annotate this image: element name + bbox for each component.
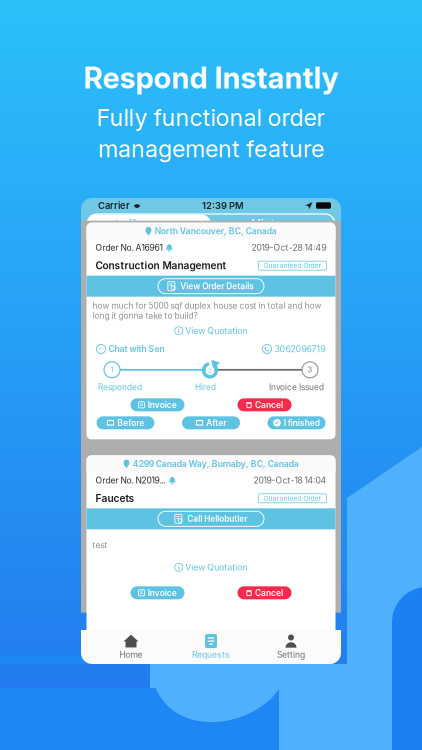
staticText: Cancel — [255, 588, 283, 598]
staticText: Home — [119, 650, 142, 660]
staticText: View Quotation — [185, 562, 247, 573]
staticText: how much for 5000 sqf duplex house cost … — [92, 301, 321, 321]
staticText: management feature — [98, 135, 324, 163]
staticText: Setting — [277, 650, 305, 660]
staticText: Hired — [195, 382, 216, 392]
staticText: 3 — [307, 365, 312, 374]
staticText: Call Hellobutler — [187, 514, 247, 524]
button[interactable]: Setting — [261, 633, 321, 661]
staticText: Carrier — [98, 200, 130, 211]
button[interactable]: Requests — [181, 633, 241, 661]
staticText: Construction Management — [95, 259, 226, 272]
staticText: Chat with Sen — [108, 344, 164, 354]
button[interactable]: After — [182, 416, 240, 429]
staticText: Fully functional order — [96, 103, 325, 132]
button[interactable]: Cancel — [237, 586, 291, 599]
button[interactable]: In Progress — [87, 214, 211, 233]
staticText: Respond Instantly — [83, 60, 338, 95]
staticText: 2019-Oct-18 14:04 — [253, 475, 326, 485]
staticText: Guaranteed Order — [263, 262, 321, 270]
staticText: In Progress — [114, 216, 183, 232]
staticText: North Vancouver, BC, Canada — [155, 226, 277, 236]
staticText: Invoice — [148, 400, 177, 410]
staticText: Guaranteed Order — [263, 494, 321, 502]
staticText: Requests — [192, 650, 230, 660]
staticText: test — [92, 540, 107, 550]
staticText: After — [206, 418, 226, 428]
button[interactable]: Invoice — [130, 398, 184, 411]
staticText: Invoice — [148, 588, 177, 598]
button[interactable]: View Quotation — [86, 326, 335, 336]
staticText: I finished — [284, 418, 320, 428]
staticText: History — [251, 216, 294, 232]
staticText: Cancel — [255, 400, 283, 410]
staticText: Order No. A16961 — [95, 242, 162, 253]
staticText: 12:39 PM — [202, 200, 244, 211]
staticText: 3062096719 — [274, 344, 325, 354]
button[interactable]: Cancel — [237, 398, 291, 411]
button[interactable]: Call Hellobutler — [86, 508, 335, 529]
button[interactable]: View Quotation — [86, 562, 335, 572]
staticText: View Quotation — [185, 325, 247, 336]
staticText: Faucets — [95, 492, 134, 504]
button[interactable]: Invoice — [130, 586, 184, 599]
button[interactable]: I finished — [267, 416, 325, 429]
button[interactable]: Home — [101, 633, 161, 661]
staticText: Order No. N2019... — [95, 475, 165, 485]
button[interactable]: History — [211, 214, 335, 233]
staticText: 2 — [208, 367, 212, 374]
staticText: 4299 Canada Way, Burnaby, BC, Canada — [133, 459, 299, 469]
staticText: View Order Details — [180, 281, 254, 291]
staticText: 2019-Oct-28 14:49 — [251, 242, 326, 253]
button[interactable]: View Order Details — [86, 276, 335, 297]
staticText: Responded — [98, 382, 142, 392]
staticText: Invoice Issued — [269, 382, 324, 392]
button[interactable]: Before — [96, 416, 154, 429]
staticText: 1 — [110, 365, 113, 374]
staticText: Before — [117, 418, 144, 428]
